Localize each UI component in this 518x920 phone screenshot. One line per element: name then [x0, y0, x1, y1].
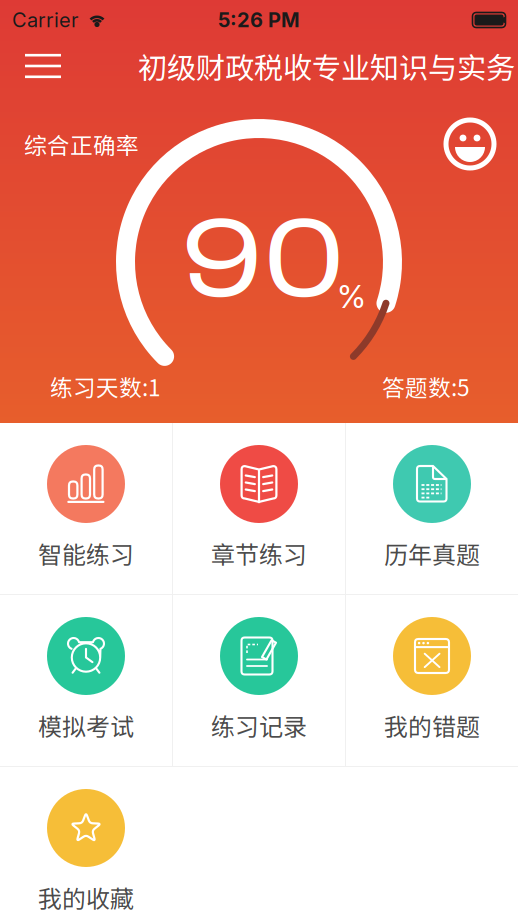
staticText: 初级财政税收专业知识与实务: [138, 45, 515, 87]
staticText: 模拟考试: [38, 708, 134, 743]
staticText: 智能练习: [38, 536, 134, 571]
staticText: 练习记录: [211, 708, 307, 743]
staticText: 我的收藏: [38, 880, 134, 915]
button[interactable]: 智能练习: [0, 423, 172, 594]
button[interactable]: 练习记录: [173, 595, 345, 766]
button[interactable]: 我的收藏: [0, 767, 172, 920]
staticText: %: [337, 277, 366, 316]
button[interactable]: 模拟考试: [0, 595, 172, 766]
staticText: 我的错题: [384, 708, 480, 743]
staticText: 综合正确率: [24, 128, 139, 160]
staticText: 历年真题: [384, 536, 480, 571]
button[interactable]: Menu: [12, 40, 74, 92]
button[interactable]: 历年真题: [346, 423, 518, 594]
staticText: 章节练习: [211, 536, 307, 571]
button[interactable]: 章节练习: [173, 423, 345, 594]
staticText: 练习天数:1: [50, 370, 161, 403]
button[interactable]: 我的错题: [346, 595, 518, 766]
staticText: 90: [181, 199, 345, 319]
staticText: 答题数:5: [382, 370, 470, 403]
staticText: 5:26 PM: [218, 8, 300, 32]
staticText: Carrier: [12, 8, 78, 32]
